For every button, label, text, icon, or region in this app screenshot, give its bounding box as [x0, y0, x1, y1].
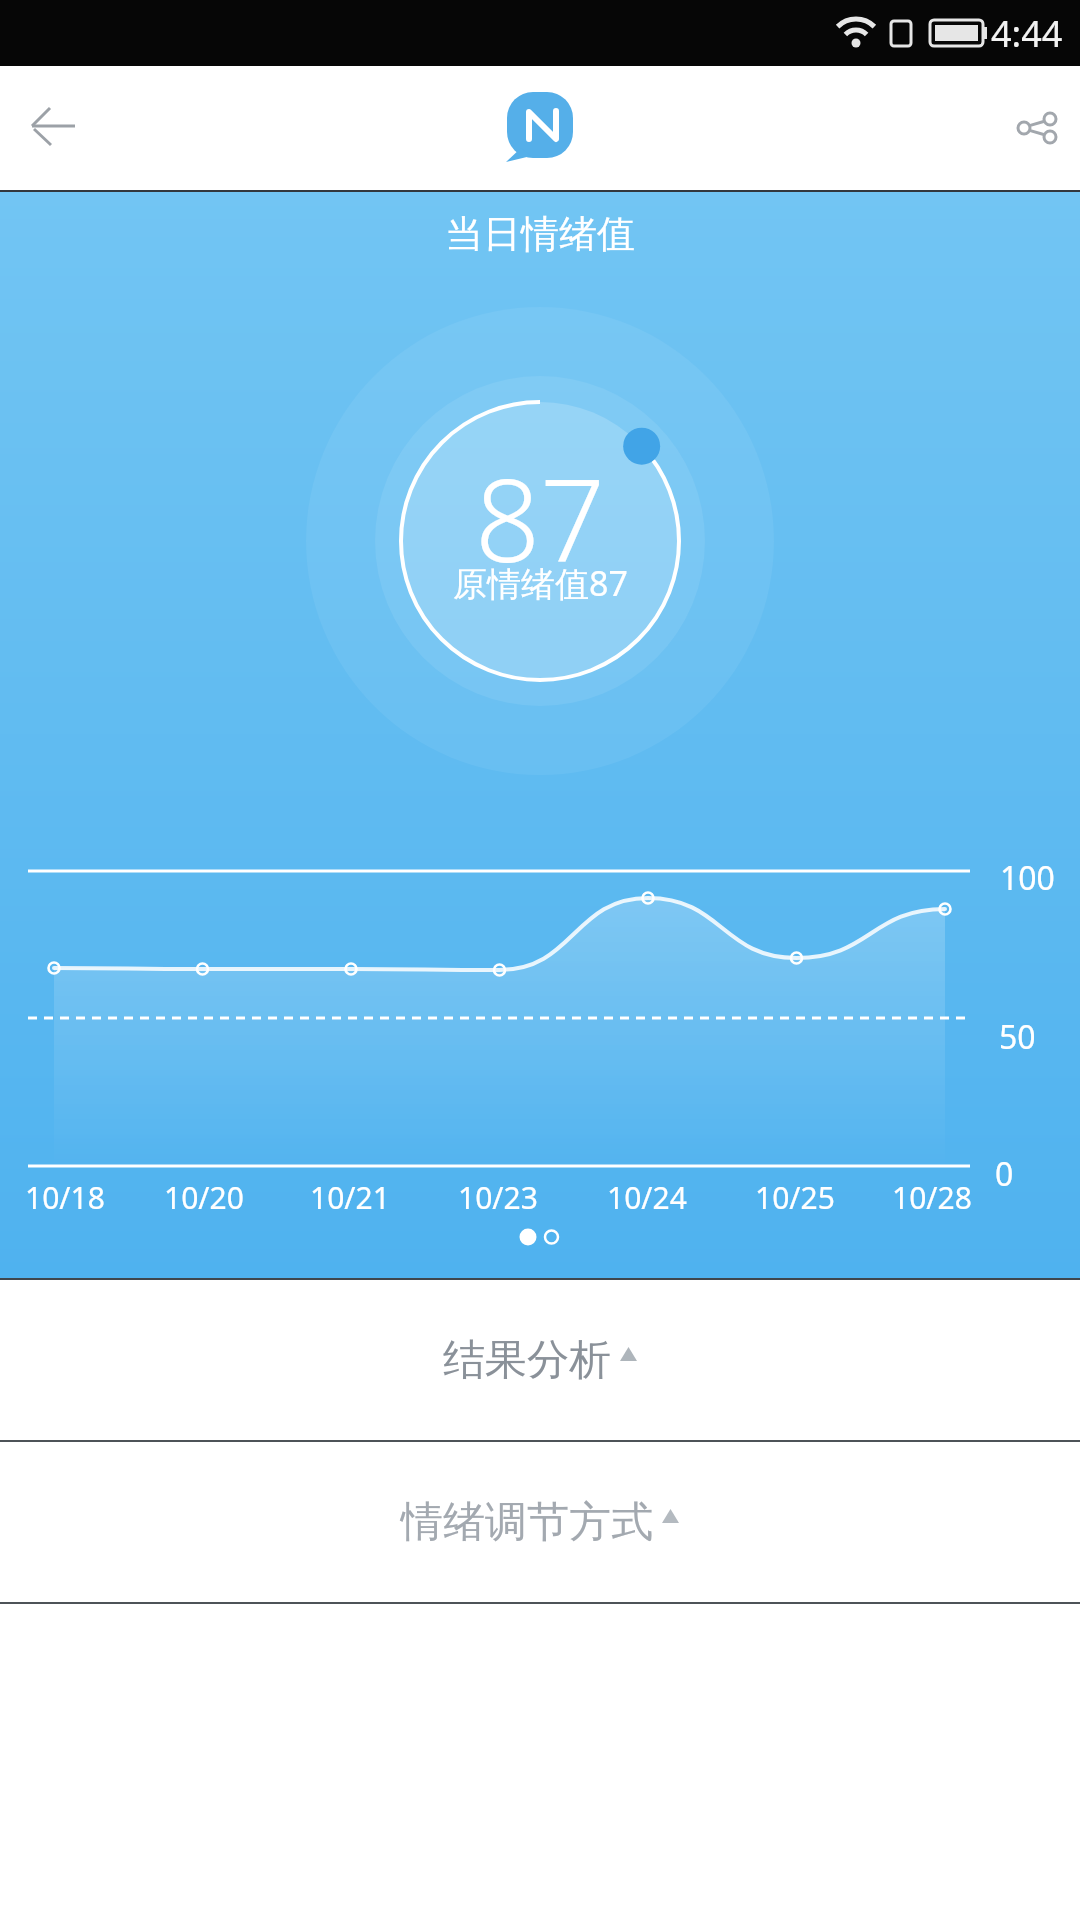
staticText: 情绪调节方式	[401, 1496, 653, 1549]
staticText: 10/20	[164, 1177, 244, 1218]
staticText: 10/23	[458, 1177, 538, 1218]
staticText: 87	[475, 440, 606, 595]
staticText: 10/18	[25, 1177, 105, 1218]
button[interactable]: 结果分析	[0, 1280, 1080, 1440]
staticText: 10/28	[892, 1177, 972, 1218]
button[interactable]	[505, 92, 575, 162]
button[interactable]	[997, 88, 1077, 168]
staticText: 100	[1000, 856, 1055, 900]
staticText: 0	[995, 1152, 1014, 1196]
staticText: 10/24	[607, 1177, 687, 1218]
staticText: 10/25	[755, 1177, 835, 1218]
staticText: 10/21	[310, 1177, 390, 1218]
staticText: 50	[999, 1015, 1036, 1059]
staticText: 4:44	[991, 9, 1063, 58]
staticText: 结果分析	[443, 1334, 611, 1387]
button[interactable]	[8, 82, 98, 172]
staticText: 原情绪值87	[453, 560, 628, 606]
staticText: 当日情绪值	[445, 210, 635, 258]
button[interactable]: 情绪调节方式	[0, 1442, 1080, 1602]
